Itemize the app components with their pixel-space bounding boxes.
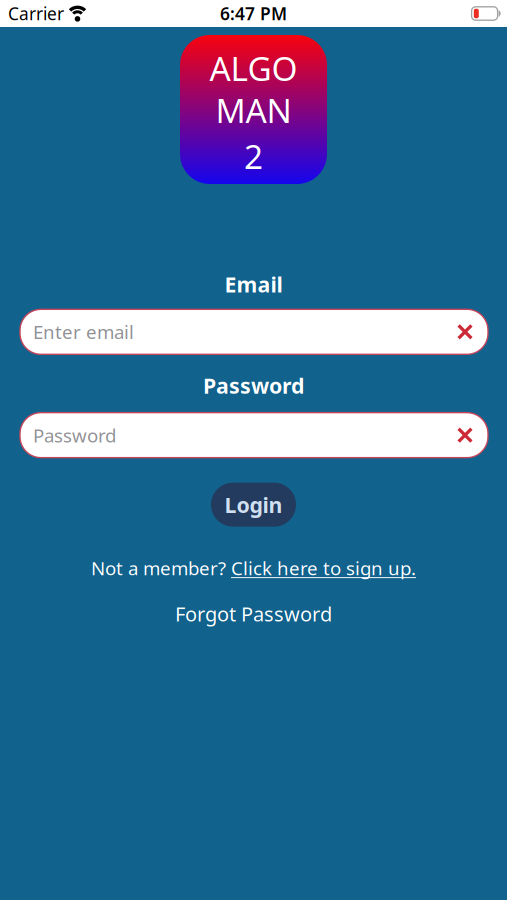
staticText: MAN xyxy=(215,88,291,132)
button[interactable]: Forgot Password xyxy=(175,600,332,627)
staticText: Forgot Password xyxy=(175,600,332,627)
staticText: Email xyxy=(224,270,282,298)
staticText: 6:47 PM xyxy=(220,2,287,25)
button[interactable] xyxy=(454,424,476,446)
staticText: Password xyxy=(203,371,304,400)
button[interactable]: Password xyxy=(20,413,488,458)
staticText: Enter email xyxy=(33,319,134,344)
button[interactable] xyxy=(454,321,476,343)
staticText: ALGO xyxy=(209,46,297,90)
staticText: 2 xyxy=(244,134,263,178)
button[interactable]: Not a member? xyxy=(91,556,416,580)
staticText: Click here to sign up. xyxy=(231,556,416,580)
staticText: Carrier xyxy=(8,2,64,25)
button[interactable]: Login xyxy=(211,483,296,527)
button[interactable]: Enter email xyxy=(20,309,488,354)
staticText: Login xyxy=(224,490,282,519)
staticText: Not a member? xyxy=(91,556,231,580)
staticText: Password xyxy=(33,423,116,448)
